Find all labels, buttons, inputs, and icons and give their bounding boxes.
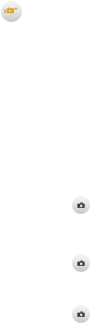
button[interactable]: Take photo bbox=[72, 305, 90, 323]
button[interactable]: Add photo bbox=[1, 1, 22, 22]
button[interactable]: Take photo bbox=[72, 254, 90, 272]
button[interactable]: Take photo bbox=[72, 196, 90, 214]
